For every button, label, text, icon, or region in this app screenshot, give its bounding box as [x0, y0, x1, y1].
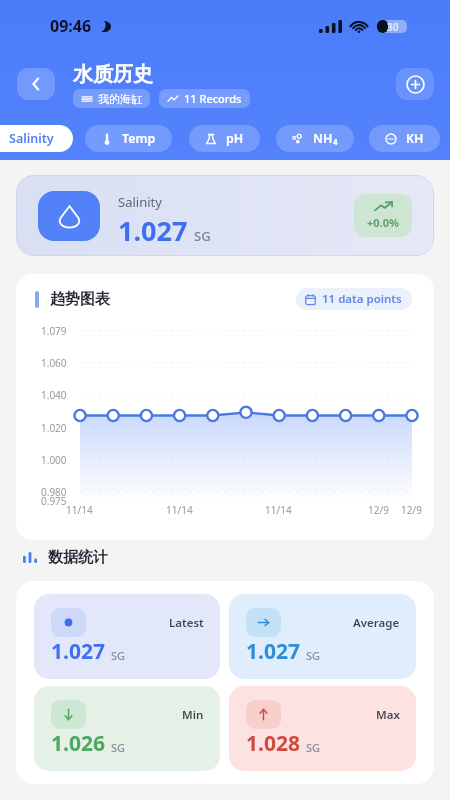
button[interactable]: pH — [189, 125, 260, 152]
staticText: 1.079 — [41, 324, 67, 338]
staticText: 11 Records — [184, 91, 242, 106]
button[interactable]: 11 Records — [159, 89, 250, 108]
staticText: SG — [306, 740, 321, 755]
staticText: Salinity — [118, 193, 162, 211]
staticText: 0.980 — [41, 485, 67, 499]
staticText: 12/9 — [368, 503, 389, 517]
staticText: 我的海缸 — [98, 92, 142, 106]
button[interactable]: NH — [276, 125, 354, 152]
staticText: 1.027 — [246, 637, 300, 665]
staticText: 数据统计 — [48, 548, 108, 567]
button[interactable]: Max — [229, 686, 416, 771]
staticText: Temp — [122, 130, 156, 147]
staticText: 09:46 — [50, 15, 92, 37]
staticText: 0.975 — [41, 494, 67, 508]
staticText: 1.027 — [118, 212, 188, 249]
staticText: NH — [313, 130, 333, 147]
staticText: Latest — [169, 615, 204, 631]
staticText: 11 data points — [322, 291, 402, 307]
staticText: 1.026 — [51, 729, 105, 757]
staticText: 11/14 — [265, 503, 292, 517]
button[interactable]: Average — [229, 594, 416, 679]
button[interactable]: Add record — [396, 68, 434, 100]
button[interactable]: 11 data points — [296, 288, 412, 310]
staticText: Average — [353, 615, 400, 631]
button[interactable]: KH — [369, 125, 440, 152]
button[interactable]: Salinity — [0, 125, 73, 152]
staticText: 12/9 — [401, 503, 422, 517]
staticText: +0.0% — [367, 215, 399, 230]
staticText: 1.040 — [41, 388, 67, 402]
button[interactable]: Salinity — [16, 175, 434, 256]
staticText: ₄ — [333, 130, 338, 147]
staticText: 趋势图表 — [50, 290, 110, 309]
staticText: Salinity — [9, 130, 54, 147]
staticText: pH — [226, 130, 244, 147]
staticText: Max — [376, 707, 400, 723]
button[interactable]: 我的海缸 — [73, 89, 150, 108]
button[interactable]: Back — [17, 68, 55, 100]
staticText: 1.028 — [246, 729, 300, 757]
staticText: 30 — [387, 20, 399, 33]
button[interactable]: Min — [34, 686, 220, 771]
button[interactable]: Latest — [34, 594, 220, 679]
staticText: KH — [406, 130, 424, 147]
staticText: 水质历史 — [73, 62, 153, 87]
staticText: 1.020 — [41, 421, 67, 435]
staticText: 1.000 — [41, 453, 67, 467]
staticText: SG — [111, 648, 126, 663]
staticText: SG — [306, 648, 321, 663]
staticText: 11/14 — [66, 503, 93, 517]
staticText: SG — [111, 740, 126, 755]
staticText: 1.060 — [41, 356, 67, 370]
button[interactable]: Temp — [85, 125, 172, 152]
staticText: SG — [194, 227, 211, 245]
staticText: 1.027 — [51, 637, 105, 665]
staticText: 11/14 — [166, 503, 193, 517]
staticText: Min — [182, 707, 204, 723]
